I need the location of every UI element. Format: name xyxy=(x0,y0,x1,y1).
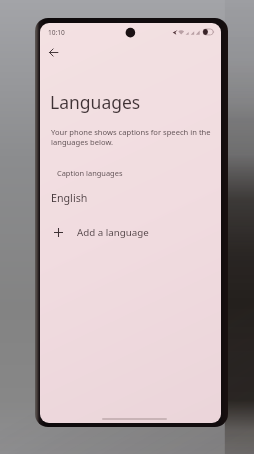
staticText: 10:10 xyxy=(48,28,65,37)
staticText: Your phone shows captions for speech in … xyxy=(51,127,221,147)
staticText: English xyxy=(51,191,88,206)
staticText: Caption languages xyxy=(57,168,123,178)
staticText: Add a language xyxy=(77,226,149,239)
button[interactable]: Back xyxy=(41,40,65,64)
button[interactable]: Add a language xyxy=(40,221,221,243)
staticText: Languages xyxy=(50,90,141,114)
button[interactable]: English xyxy=(40,187,221,209)
